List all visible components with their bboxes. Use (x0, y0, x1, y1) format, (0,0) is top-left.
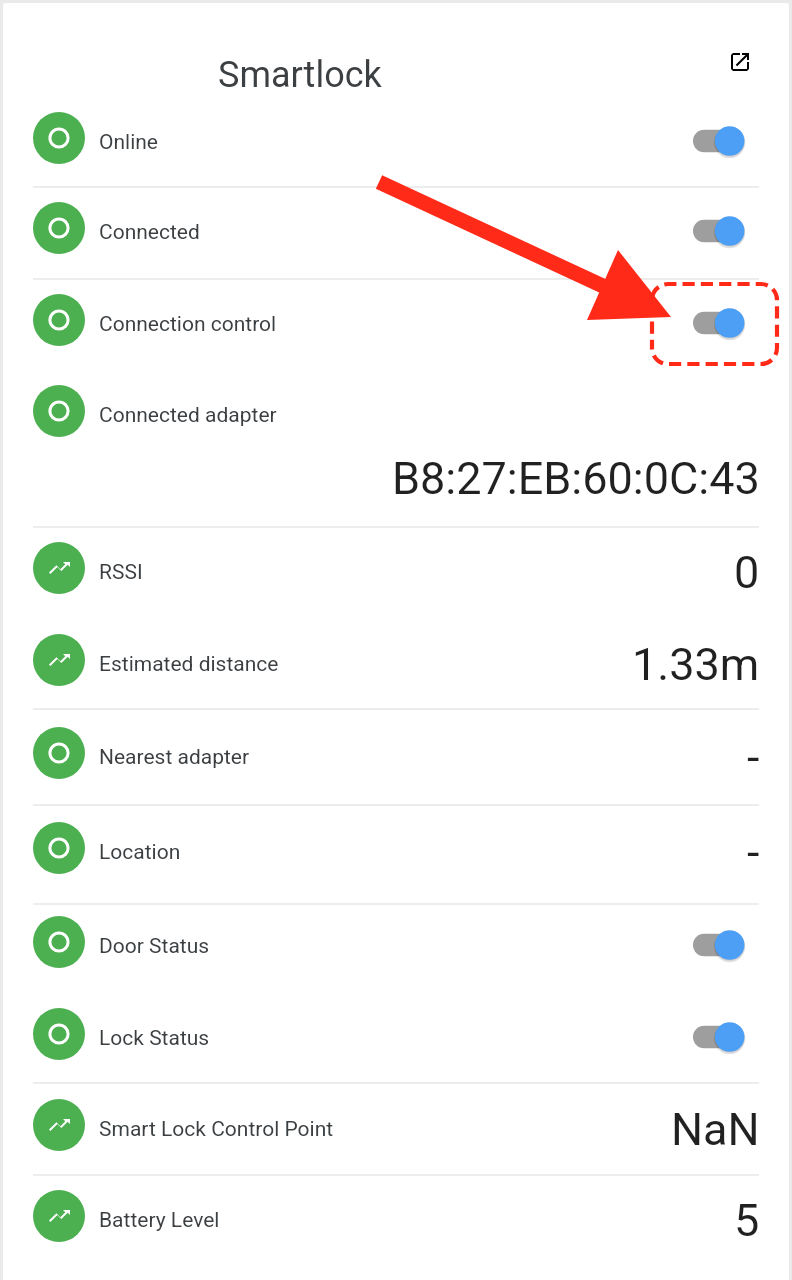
staticText: Estimated distance (99, 652, 279, 677)
button[interactable]: Location (3, 803, 789, 893)
staticText: 1.33m (632, 638, 760, 691)
button[interactable]: Toggle (693, 1015, 757, 1059)
staticText: Connection control (99, 312, 277, 337)
button[interactable]: Lock Status (3, 989, 789, 1079)
button[interactable]: Connection control (3, 275, 789, 365)
button[interactable]: Open in new window (728, 50, 752, 74)
button[interactable]: Toggle (693, 301, 757, 345)
button[interactable]: Toggle (693, 923, 757, 967)
staticText: RSSI (99, 560, 143, 585)
staticText: NaN (671, 1103, 760, 1156)
staticText: B8:27:EB:60:0C:43 (392, 452, 760, 505)
staticText: Battery Level (99, 1208, 220, 1233)
button[interactable]: RSSI (3, 523, 789, 613)
button[interactable]: Connected (3, 183, 789, 273)
button[interactable]: Battery Level (3, 1171, 789, 1261)
button[interactable]: Connected adapter (3, 366, 789, 456)
staticText: Door Status (99, 934, 210, 959)
staticText: - (747, 731, 760, 784)
staticText: Smartlock (218, 54, 382, 96)
staticText: - (747, 826, 760, 879)
button[interactable]: Estimated distance (3, 615, 789, 705)
staticText: 0 (734, 546, 760, 599)
staticText: Nearest adapter (99, 745, 250, 770)
staticText: Online (99, 130, 158, 155)
staticText: Location (99, 840, 181, 865)
button[interactable]: Door Status (3, 897, 789, 987)
staticText: 5 (734, 1194, 760, 1247)
button[interactable]: Online (3, 93, 789, 183)
button[interactable]: Smart Lock Control Point (3, 1080, 789, 1170)
staticText: Connected (99, 220, 200, 245)
button[interactable]: Toggle (693, 209, 757, 253)
staticText: Lock Status (99, 1026, 210, 1051)
staticText: Smart Lock Control Point (99, 1117, 334, 1142)
staticText: Connected adapter (99, 403, 277, 428)
button[interactable]: Toggle (693, 119, 757, 163)
button[interactable]: Nearest adapter (3, 708, 789, 798)
